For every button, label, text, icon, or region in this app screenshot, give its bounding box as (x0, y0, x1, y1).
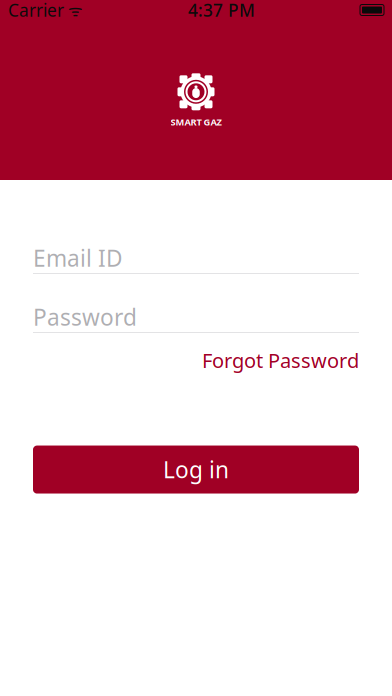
staticText: Log in (163, 454, 229, 485)
button[interactable]: Log in (33, 446, 359, 494)
staticText: SMART GAZ (170, 116, 221, 128)
staticText: Forgot Password (202, 347, 359, 374)
staticText: Carrier (8, 0, 64, 21)
staticText: ᯤ (64, 0, 83, 21)
staticText: Password (33, 302, 137, 332)
staticText: Email ID (33, 243, 123, 273)
button[interactable]: Forgot Password (202, 343, 359, 378)
staticText: 4:37 PM (188, 0, 255, 21)
